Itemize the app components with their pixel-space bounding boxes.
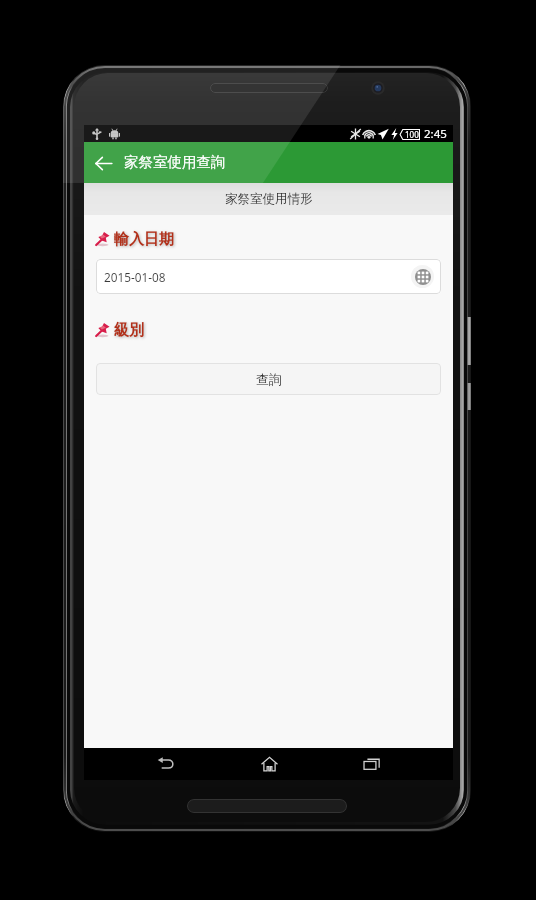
button[interactable]: 查詢	[96, 363, 441, 395]
staticText: 家祭室使用情形	[225, 191, 313, 207]
button[interactable]: Home	[249, 748, 289, 780]
staticText: 2:45	[424, 126, 447, 142]
staticText: 級別	[114, 321, 144, 340]
staticText: 輸入日期	[114, 230, 174, 249]
button[interactable]: Back	[87, 147, 119, 179]
button[interactable]: Recents	[351, 748, 391, 780]
button[interactable]: Back	[146, 748, 186, 780]
staticText: 100	[405, 129, 419, 140]
staticText: 2015-01-08	[104, 269, 166, 285]
button[interactable]: 2015-01-08	[96, 259, 441, 294]
staticText: 家祭室使用查詢	[124, 153, 226, 171]
staticText: 查詢	[256, 371, 282, 387]
